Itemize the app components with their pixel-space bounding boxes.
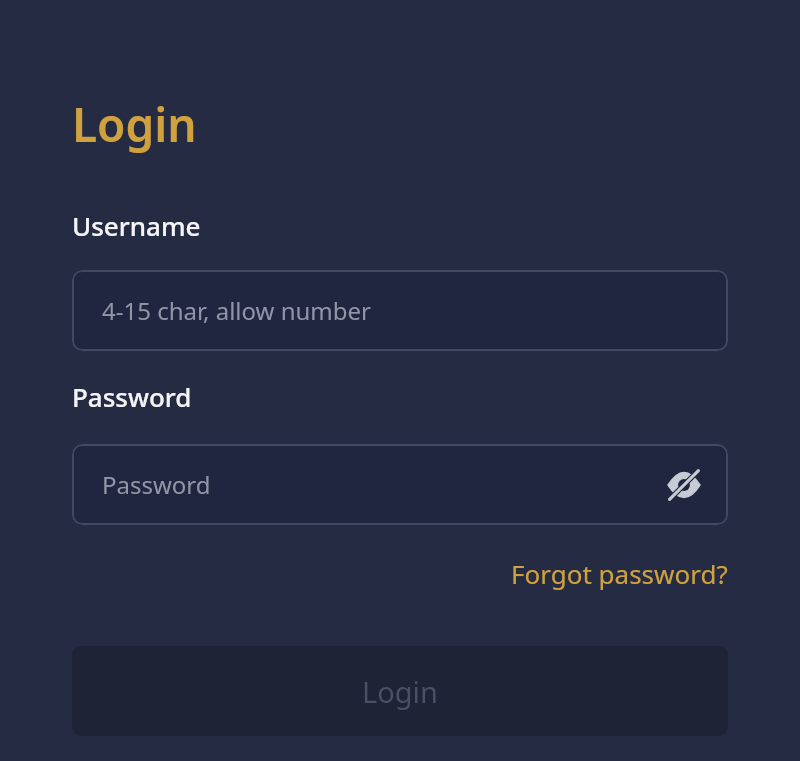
staticText: Password [72,379,192,414]
staticText: Username [72,208,201,243]
button[interactable]: 4-15 char, allow number [72,270,728,351]
button[interactable]: Forgot password? [511,556,728,591]
button[interactable]: Password [72,444,728,525]
staticText: Password [102,468,211,501]
button[interactable]: Login [72,646,728,736]
button[interactable] [666,467,702,503]
staticText: Login [72,93,197,156]
staticText: 4-15 char, allow number [102,294,372,327]
staticText: Login [362,672,438,711]
